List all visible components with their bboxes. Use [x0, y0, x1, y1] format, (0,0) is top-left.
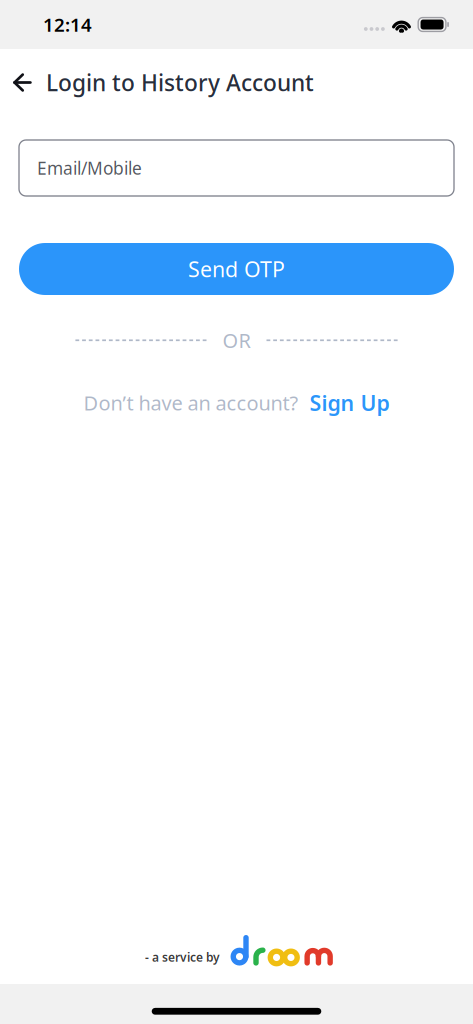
staticText: OR	[222, 327, 250, 354]
staticText: - a service by	[145, 949, 220, 965]
staticText: Sign Up	[309, 389, 389, 417]
staticText: Don’t have an account?	[83, 389, 298, 416]
button[interactable]: Back	[0, 61, 46, 104]
button[interactable]: Send OTP	[19, 243, 454, 295]
button[interactable]: Sign Up	[309, 389, 389, 417]
staticText: Send OTP	[188, 255, 285, 283]
staticText: Email/Mobile	[37, 156, 142, 179]
staticText: 12:14	[43, 12, 92, 37]
button[interactable]: Email/Mobile	[19, 140, 454, 196]
staticText: Login to History Account	[46, 67, 314, 97]
